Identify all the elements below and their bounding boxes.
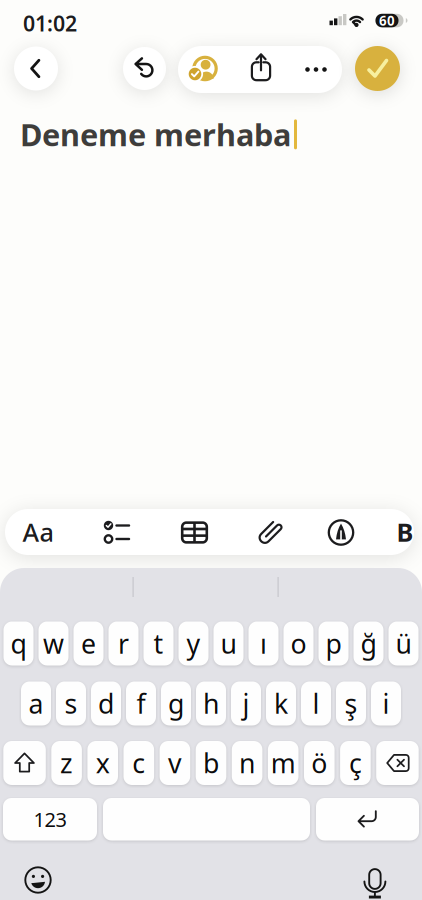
staticText: d (98, 686, 114, 721)
button[interactable]: f (126, 681, 156, 725)
button[interactable]: h (196, 681, 226, 725)
staticText: m (271, 745, 296, 781)
button[interactable]: l (301, 681, 331, 725)
button[interactable]: Undo (123, 47, 166, 90)
staticText: n (239, 745, 255, 781)
button[interactable]: ğ (353, 621, 383, 665)
button[interactable]: c (123, 741, 154, 785)
staticText: i (382, 686, 389, 721)
staticText: ü (395, 626, 411, 661)
button[interactable]: Checklist (87, 509, 143, 555)
button[interactable]: z (51, 741, 82, 785)
button[interactable]: q (3, 621, 33, 665)
button[interactable]: Draw (313, 509, 369, 555)
staticText: w (43, 626, 64, 661)
button[interactable]: More (290, 46, 342, 93)
staticText: u (220, 626, 236, 661)
staticText: c (132, 745, 145, 781)
button[interactable]: r (108, 621, 138, 665)
button[interactable]: ö (304, 741, 335, 785)
button[interactable]: Collaborate (178, 46, 232, 93)
button[interactable]: t (143, 621, 173, 665)
button[interactable]: g (161, 681, 191, 725)
button[interactable]: v (160, 741, 190, 785)
staticText: g (168, 686, 184, 721)
button[interactable]: Bold (385, 509, 422, 555)
staticText: v (168, 745, 182, 781)
staticText: s (64, 686, 77, 721)
button[interactable]: Done (355, 46, 400, 91)
button[interactable]: a (21, 681, 51, 725)
button[interactable]: w (38, 621, 68, 665)
button[interactable]: m (268, 741, 298, 785)
staticText: p (325, 626, 341, 661)
staticText: ç (349, 745, 362, 781)
button[interactable]: ı (248, 621, 278, 665)
button[interactable]: Attach (242, 509, 298, 555)
staticText: Aa (22, 515, 53, 549)
staticText: t (153, 626, 163, 661)
button[interactable]: o (283, 621, 313, 665)
button[interactable]: Share (236, 46, 290, 93)
button[interactable]: Table (166, 509, 222, 555)
staticText: ş (344, 686, 357, 721)
button[interactable]: Return (316, 798, 419, 840)
staticText: 01:02 (23, 9, 77, 37)
staticText: k (274, 686, 288, 721)
button[interactable]: ü (388, 621, 418, 665)
staticText: f (136, 686, 145, 721)
button[interactable]: u (213, 621, 243, 665)
button[interactable]: p (318, 621, 348, 665)
button[interactable]: j (231, 681, 261, 725)
staticText: h (203, 686, 219, 721)
button[interactable]: y (178, 621, 208, 665)
staticText: ğ (360, 626, 376, 661)
staticText: 60 (379, 12, 395, 29)
button[interactable]: Shift (3, 741, 46, 785)
staticText: ö (311, 745, 327, 781)
button[interactable]: ş (336, 681, 366, 725)
staticText: o (290, 626, 306, 661)
staticText: B (396, 515, 413, 549)
button[interactable]: 123 (3, 798, 97, 840)
staticText: b (203, 745, 219, 781)
button[interactable]: n (232, 741, 262, 785)
staticText: y (186, 626, 200, 661)
button[interactable]: Dictate (361, 866, 389, 900)
staticText: j (242, 686, 249, 721)
staticText: q (10, 626, 26, 661)
staticText: 123 (33, 806, 66, 833)
button[interactable]: e (73, 621, 103, 665)
staticText: r (118, 626, 129, 661)
button[interactable]: k (266, 681, 296, 725)
staticText: Deneme merhaba (20, 114, 291, 155)
staticText: z (60, 745, 73, 781)
button[interactable]: i (371, 681, 401, 725)
staticText: a (28, 686, 43, 721)
staticText: x (96, 745, 110, 781)
button[interactable]: Delete (376, 741, 419, 785)
button[interactable]: s (56, 681, 86, 725)
button[interactable]: b (196, 741, 226, 785)
button[interactable]: Format (13, 509, 63, 555)
button[interactable]: ç (340, 741, 371, 785)
button[interactable]: x (87, 741, 118, 785)
staticText: e (81, 626, 96, 661)
button[interactable]: d (91, 681, 121, 725)
button[interactable]: Emoji (24, 866, 52, 894)
button[interactable]: Back (14, 46, 58, 90)
staticText: l (312, 686, 319, 721)
staticText: ı (260, 626, 267, 661)
